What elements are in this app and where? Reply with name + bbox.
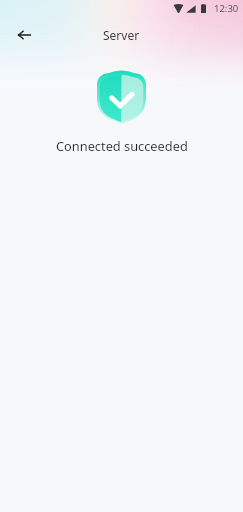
staticText: 12:30 bbox=[214, 2, 239, 15]
staticText: Connected succeeded bbox=[56, 137, 188, 154]
staticText: Server bbox=[103, 27, 140, 43]
button[interactable]: Back bbox=[7, 18, 41, 52]
